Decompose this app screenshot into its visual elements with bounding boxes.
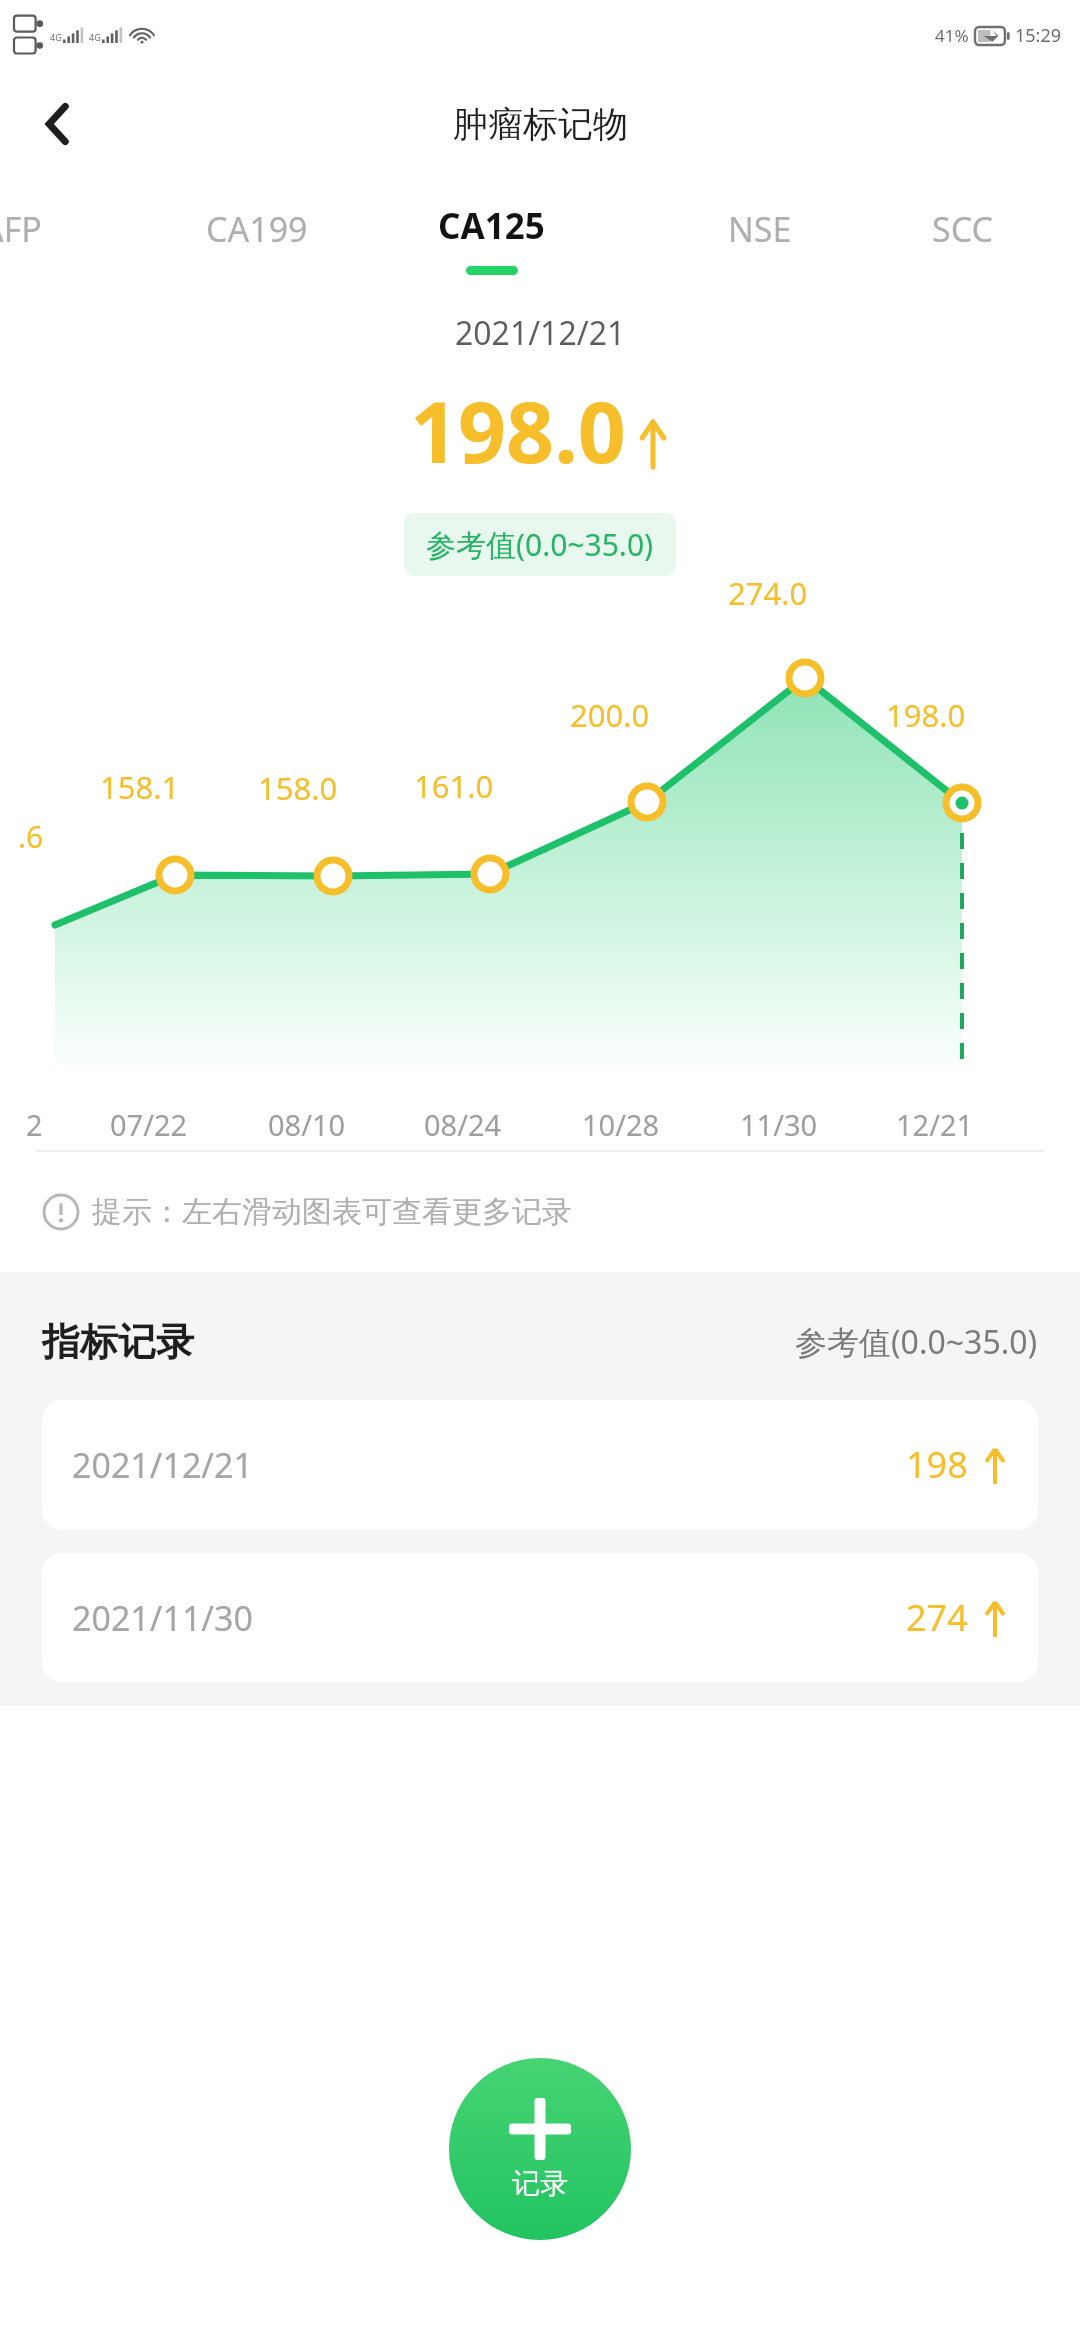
staticText: 肿瘤标记物	[453, 102, 628, 146]
staticText: 10/28	[582, 1105, 660, 1144]
staticText: 198	[906, 1440, 968, 1489]
staticText: 指标记录	[42, 1318, 194, 1366]
staticText: 158.1	[100, 766, 180, 808]
staticText: SCC	[932, 206, 993, 252]
staticText: 4G	[50, 31, 62, 43]
staticText: 161.0	[414, 765, 494, 807]
staticText: 08/10	[268, 1105, 346, 1144]
button[interactable]: 记录	[449, 2058, 631, 2240]
staticText: 参考值(0.0~35.0)	[426, 524, 654, 565]
staticText: 198.0	[886, 694, 966, 736]
button[interactable]: CA199	[196, 200, 318, 258]
staticText: 11/30	[740, 1105, 818, 1144]
staticText: 198.0	[410, 373, 626, 487]
staticText: NSE	[728, 206, 792, 252]
staticText: 200.0	[570, 694, 650, 736]
staticText: CA125	[438, 202, 545, 250]
staticText: 274.0	[728, 572, 808, 614]
staticText: 参考值(0.0~35.0)	[795, 1320, 1038, 1364]
staticText: CA199	[206, 206, 308, 252]
staticText: 提示：左右滑动图表可查看更多记录	[92, 1193, 572, 1231]
staticText: 08/24	[424, 1105, 502, 1144]
staticText: 15:29	[1015, 23, 1062, 48]
staticText: 158.0	[258, 767, 338, 809]
button[interactable]: NSE	[718, 200, 802, 258]
button[interactable]: AFP	[0, 200, 52, 258]
button[interactable]: SCC	[922, 200, 1003, 258]
staticText: 12/21	[896, 1105, 974, 1144]
button[interactable]: 参考值(0.0~35.0)	[404, 513, 676, 576]
staticText: 2021/12/21	[455, 311, 626, 355]
staticText: 2021/12/21	[72, 1442, 253, 1488]
staticText: 07/22	[110, 1105, 188, 1144]
staticText: 2	[26, 1105, 43, 1144]
staticText: 记录	[512, 2166, 568, 2201]
button[interactable]: 2021/12/21	[42, 1400, 1038, 1529]
button[interactable]: 2021/11/30	[42, 1553, 1038, 1682]
staticText: 4G	[89, 31, 101, 43]
staticText: 41%	[935, 24, 969, 47]
button[interactable]: CA125	[428, 196, 555, 275]
button[interactable]: Back	[26, 92, 90, 156]
staticText: 274	[906, 1593, 968, 1642]
staticText: .6	[18, 816, 44, 857]
staticText: AFP	[0, 206, 42, 252]
staticText: 2021/11/30	[72, 1595, 253, 1641]
